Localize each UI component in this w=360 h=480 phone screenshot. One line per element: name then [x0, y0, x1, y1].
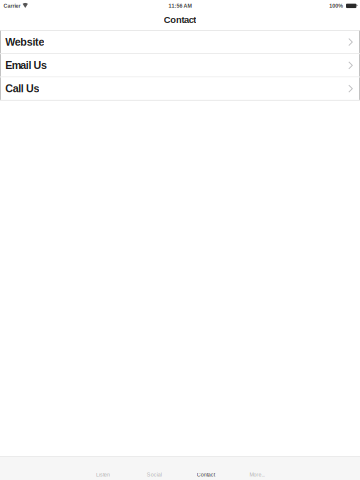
button[interactable]: Website: [0, 31, 360, 54]
staticText: 100%: [329, 3, 343, 9]
button[interactable]: Email Us: [0, 54, 360, 77]
staticText: Listen: [96, 472, 110, 478]
staticText: 11:56 AM: [168, 3, 191, 9]
button[interactable]: Social: [129, 456, 180, 480]
staticText: Call Us: [5, 83, 39, 95]
button[interactable]: Call Us: [0, 77, 360, 101]
staticText: Social: [147, 472, 162, 478]
staticText: Contact: [164, 14, 196, 25]
staticText: Contact: [197, 472, 215, 478]
button[interactable]: More...: [231, 456, 283, 480]
staticText: More...: [250, 472, 265, 478]
staticText: Email Us: [5, 59, 47, 71]
staticText: Website: [5, 36, 44, 48]
button[interactable]: Contact: [180, 456, 231, 480]
button[interactable]: Listen: [77, 456, 129, 480]
staticText: Carrier: [4, 3, 21, 9]
